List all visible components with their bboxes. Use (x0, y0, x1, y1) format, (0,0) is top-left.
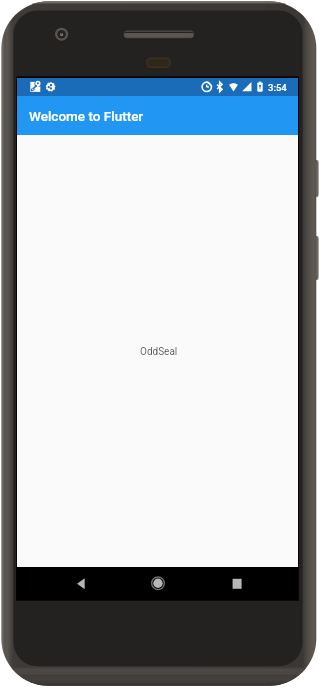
staticText: OddSeal (140, 346, 178, 358)
button[interactable]: Recent apps (221, 567, 253, 600)
button[interactable]: Back (65, 567, 97, 600)
button[interactable]: Home (142, 567, 174, 600)
staticText: Welcome to Flutter (29, 108, 144, 124)
staticText: 3:54 (268, 82, 287, 93)
button[interactable]: Welcome to Flutter (17, 96, 298, 135)
